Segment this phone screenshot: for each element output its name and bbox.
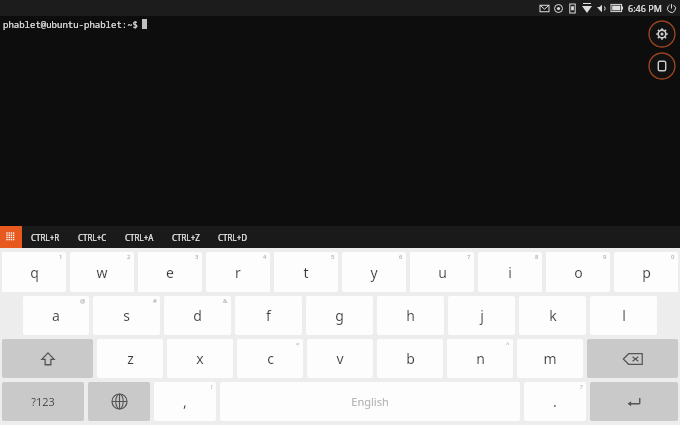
- staticText: &: [223, 297, 228, 305]
- staticText: g: [335, 306, 344, 325]
- button[interactable]: w: [70, 252, 134, 292]
- staticText: y: [370, 263, 378, 282]
- staticText: 2: [127, 253, 131, 261]
- button[interactable]: CTRL+D: [209, 226, 257, 248]
- staticText: !: [211, 383, 213, 391]
- button[interactable]: x: [167, 339, 233, 378]
- button[interactable]: Backspace: [587, 339, 678, 378]
- staticText: k: [549, 306, 557, 325]
- button[interactable]: CTRL+A: [116, 226, 163, 248]
- staticText: v: [336, 349, 344, 368]
- button[interactable]: d: [164, 296, 231, 335]
- button[interactable]: z: [97, 339, 163, 378]
- button[interactable]: c: [237, 339, 303, 378]
- staticText: ^: [506, 340, 510, 348]
- staticText: 6:46 PM: [628, 2, 662, 14]
- staticText: 3: [195, 253, 199, 261]
- staticText: f: [266, 306, 271, 325]
- button[interactable]: .: [524, 382, 586, 421]
- staticText: s: [123, 306, 130, 325]
- button[interactable]: ,: [154, 382, 216, 421]
- button[interactable]: Change language: [88, 382, 150, 421]
- staticText: <: [296, 340, 300, 348]
- staticText: p: [642, 263, 651, 282]
- button[interactable]: CTRL+C: [69, 226, 116, 248]
- button[interactable]: u: [410, 252, 474, 292]
- button[interactable]: l: [590, 296, 657, 335]
- staticText: English: [351, 394, 389, 409]
- button[interactable]: b: [377, 339, 443, 378]
- staticText: l: [622, 306, 626, 325]
- staticText: ?: [580, 383, 583, 391]
- staticText: c: [267, 349, 274, 368]
- staticText: i: [508, 263, 512, 282]
- staticText: 1: [59, 253, 63, 261]
- button[interactable]: s: [93, 296, 160, 335]
- staticText: 7: [467, 253, 471, 261]
- button[interactable]: Shift: [2, 339, 93, 378]
- button[interactable]: r: [206, 252, 270, 292]
- button[interactable]: Enter: [590, 382, 678, 421]
- button[interactable]: q: [2, 252, 66, 292]
- staticText: 8: [535, 253, 539, 261]
- staticText: j: [480, 306, 484, 325]
- staticText: ,: [183, 392, 187, 411]
- staticText: x: [196, 349, 204, 368]
- staticText: d: [193, 306, 202, 325]
- button[interactable]: CTRL+R: [22, 226, 69, 248]
- button[interactable]: Tabs: [648, 52, 676, 80]
- button[interactable]: Keyboard shortcuts: [0, 226, 22, 248]
- staticText: 6: [399, 253, 403, 261]
- button[interactable]: j: [448, 296, 515, 335]
- button[interactable]: t: [274, 252, 338, 292]
- staticText: 4: [263, 253, 267, 261]
- button[interactable]: p: [614, 252, 678, 292]
- staticText: t: [303, 263, 309, 282]
- button[interactable]: n: [447, 339, 513, 378]
- button[interactable]: k: [519, 296, 586, 335]
- button[interactable]: i: [478, 252, 542, 292]
- button[interactable]: CTRL+Z: [163, 226, 209, 248]
- staticText: 5: [331, 253, 335, 261]
- staticText: #: [153, 297, 157, 305]
- button[interactable]: v: [307, 339, 373, 378]
- staticText: m: [543, 349, 557, 368]
- button[interactable]: g: [306, 296, 373, 335]
- button[interactable]: English: [220, 382, 520, 421]
- staticText: o: [574, 263, 583, 282]
- staticText: n: [476, 349, 485, 368]
- staticText: ?123: [31, 394, 55, 409]
- staticText: h: [406, 306, 415, 325]
- button[interactable]: y: [342, 252, 406, 292]
- staticText: .: [553, 392, 557, 411]
- button[interactable]: f: [235, 296, 302, 335]
- staticText: phablet@ubuntu-phablet:~$: [3, 18, 139, 30]
- button[interactable]: a: [23, 296, 89, 335]
- staticText: q: [30, 263, 39, 282]
- staticText: CTRL+C: [78, 232, 107, 243]
- staticText: @: [80, 297, 86, 305]
- staticText: CTRL+R: [31, 232, 60, 243]
- staticText: 9: [603, 253, 607, 261]
- staticText: CTRL+A: [125, 232, 154, 243]
- staticText: 0: [671, 253, 675, 261]
- button[interactable]: h: [377, 296, 444, 335]
- staticText: w: [96, 263, 108, 282]
- button[interactable]: m: [517, 339, 583, 378]
- staticText: CTRL+Z: [172, 232, 200, 243]
- button[interactable]: Settings: [648, 20, 676, 48]
- staticText: b: [406, 349, 415, 368]
- button[interactable]: e: [138, 252, 202, 292]
- staticText: CTRL+D: [218, 232, 248, 243]
- staticText: e: [166, 263, 174, 282]
- button[interactable]: ?123: [2, 382, 84, 421]
- staticText: r: [235, 263, 241, 282]
- button[interactable]: o: [546, 252, 610, 292]
- staticText: u: [438, 263, 447, 282]
- staticText: a: [52, 306, 60, 325]
- staticText: z: [127, 349, 134, 368]
